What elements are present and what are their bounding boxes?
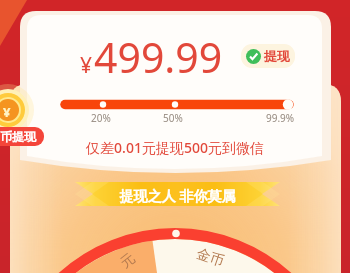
staticText: 499.99 <box>94 29 223 85</box>
staticText: 99.9% <box>266 111 295 125</box>
staticText: 20% <box>91 111 111 125</box>
staticText: ¥ <box>80 51 93 80</box>
staticText: 提现 <box>264 48 290 64</box>
staticText: ¥ <box>3 103 11 121</box>
staticText: 金币 <box>194 245 226 271</box>
staticText: 仅差0.01元提现500元到微信 <box>0 138 350 157</box>
button[interactable]: 金币提现 <box>0 127 44 146</box>
staticText: 元 <box>117 250 139 272</box>
staticText: 50% <box>163 111 183 125</box>
button[interactable]: 提现之人 非你莫属 <box>75 186 280 205</box>
button[interactable]: 提现 <box>241 44 295 68</box>
staticText: 金币提现 <box>0 129 36 144</box>
